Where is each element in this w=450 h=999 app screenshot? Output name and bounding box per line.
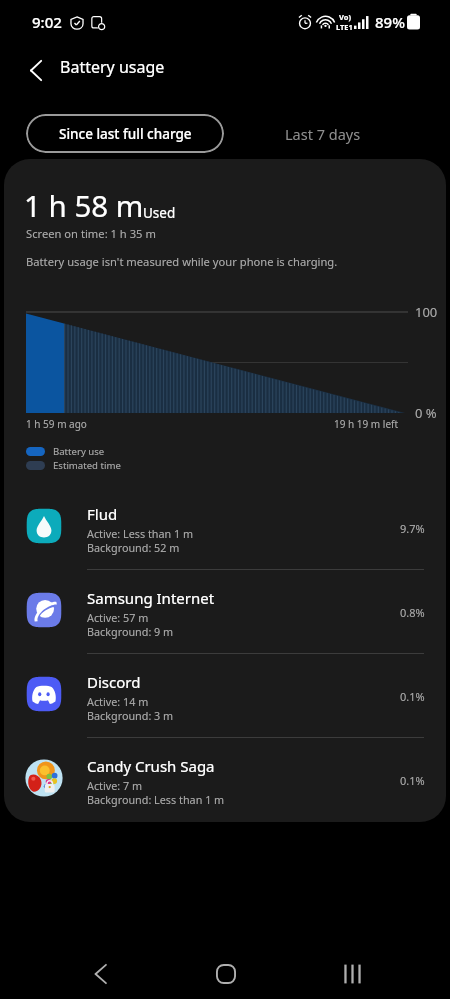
staticText: LTE1 xyxy=(336,22,353,32)
staticText: Last 7 days xyxy=(285,124,361,144)
staticText: 1 h 58 m xyxy=(24,185,144,225)
staticText: 0.8% xyxy=(400,605,425,620)
staticText: Battery usage xyxy=(60,56,165,78)
staticText: Candy Crush Saga xyxy=(87,756,215,776)
staticText: Since last full charge xyxy=(59,125,192,143)
button[interactable]: Recent apps xyxy=(322,944,382,999)
button[interactable]: Candy Crush Saga xyxy=(4,738,446,822)
staticText: Background: 9 m xyxy=(87,624,174,639)
staticText: Vo) xyxy=(339,12,351,22)
staticText: Flud xyxy=(87,504,118,524)
staticText: Screen on time: 1 h 35 m xyxy=(26,226,156,241)
staticText: Background: 3 m xyxy=(87,708,174,723)
button[interactable]: Discord xyxy=(4,654,446,738)
button[interactable]: Navigate up xyxy=(18,52,54,88)
staticText: Active: 7 m xyxy=(87,778,143,793)
button[interactable]: Back xyxy=(70,944,130,999)
staticText: 0.1% xyxy=(400,689,425,704)
staticText: Used xyxy=(143,204,176,222)
staticText: 89% xyxy=(375,12,405,32)
staticText: Active: 14 m xyxy=(87,694,149,709)
staticText: Estimated time xyxy=(53,459,121,472)
button[interactable]: Last 7 days xyxy=(265,114,381,153)
staticText: 9:02 xyxy=(32,12,62,32)
staticText: Background: 52 m xyxy=(87,540,180,555)
staticText: 100 xyxy=(415,303,438,321)
staticText: 0 % xyxy=(415,404,437,422)
staticText: 0.1% xyxy=(400,773,425,788)
staticText: Samsung Internet xyxy=(87,588,215,608)
staticText: Active: 57 m xyxy=(87,610,149,625)
button[interactable]: Samsung Internet xyxy=(4,570,446,654)
staticText: 19 h 19 m left xyxy=(334,417,399,431)
button[interactable]: Flud xyxy=(4,486,446,570)
staticText: 9.7% xyxy=(400,521,425,536)
staticText: Battery usage isn't measured while your … xyxy=(26,254,338,269)
staticText: Active: Less than 1 m xyxy=(87,526,194,541)
staticText: Battery use xyxy=(53,445,105,458)
staticText: Background: Less than 1 m xyxy=(87,792,225,807)
staticText: 1 h 59 m ago xyxy=(26,417,87,431)
button[interactable]: Since last full charge xyxy=(26,114,224,153)
staticText: Discord xyxy=(87,672,141,692)
button[interactable]: Home xyxy=(196,944,256,999)
